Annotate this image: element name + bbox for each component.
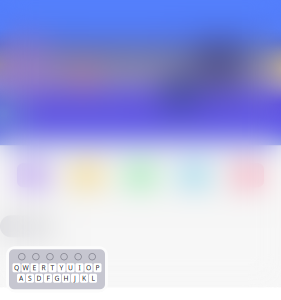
staticText: J bbox=[74, 274, 76, 283]
staticText: F bbox=[46, 274, 49, 283]
staticText: Y bbox=[59, 263, 63, 272]
staticText: I bbox=[78, 263, 80, 272]
staticText: L bbox=[91, 274, 94, 283]
staticText: O bbox=[86, 263, 91, 272]
staticText: D bbox=[36, 274, 41, 283]
staticText: W bbox=[22, 263, 28, 272]
staticText: T bbox=[50, 263, 54, 272]
staticText: G bbox=[54, 274, 59, 283]
staticText: S bbox=[28, 274, 32, 283]
staticText: A bbox=[19, 274, 23, 283]
staticText: R bbox=[41, 263, 45, 272]
staticText: E bbox=[32, 263, 36, 272]
staticText: Q bbox=[14, 263, 19, 272]
staticText: U bbox=[68, 263, 73, 272]
staticText: P bbox=[95, 263, 99, 272]
staticText: K bbox=[82, 274, 86, 283]
staticText: H bbox=[63, 274, 68, 283]
